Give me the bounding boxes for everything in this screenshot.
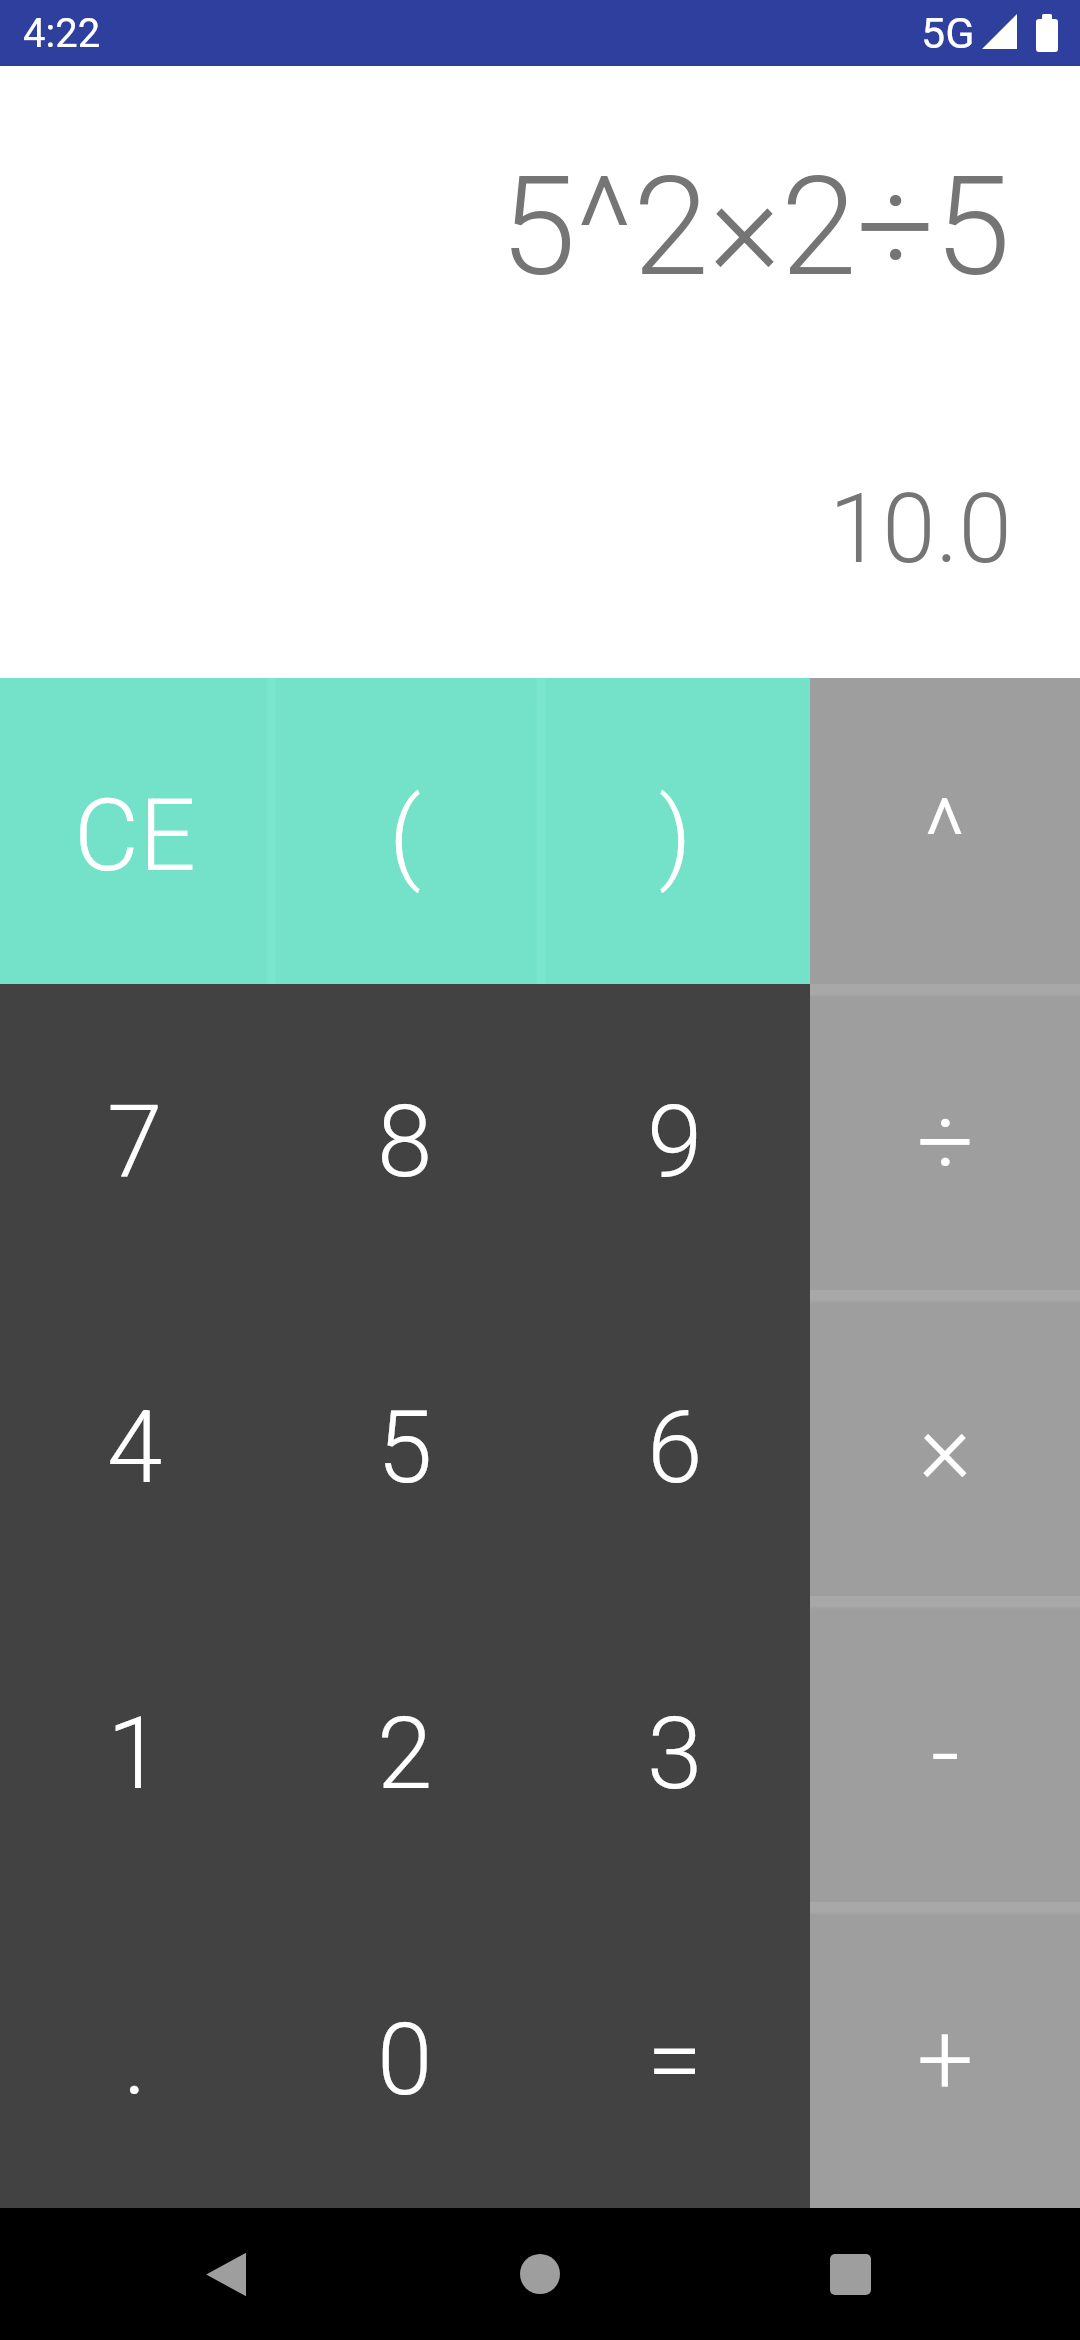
staticText: × bbox=[919, 1389, 972, 1506]
button[interactable]: Recent apps bbox=[784, 2208, 916, 2340]
button[interactable]: 9 bbox=[540, 984, 810, 1290]
staticText: 4:22 bbox=[23, 10, 101, 57]
staticText: 2 bbox=[377, 1695, 433, 1812]
button[interactable]: . bbox=[0, 1902, 270, 2208]
button[interactable]: ( bbox=[270, 678, 540, 984]
staticText: 3 bbox=[647, 1695, 703, 1812]
staticText: ( bbox=[389, 777, 421, 894]
staticText: 10.0 bbox=[829, 473, 1012, 586]
staticText: ^ bbox=[924, 777, 966, 894]
button[interactable]: ^ bbox=[810, 678, 1080, 984]
staticText: . bbox=[123, 2001, 147, 2118]
button[interactable]: Home bbox=[474, 2208, 606, 2340]
button[interactable]: Back bbox=[160, 2208, 292, 2340]
staticText: 1 bbox=[107, 1695, 163, 1812]
button[interactable]: + bbox=[810, 1902, 1080, 2208]
button[interactable]: 8 bbox=[270, 984, 540, 1290]
button[interactable]: 7 bbox=[0, 984, 270, 1290]
button[interactable]: 5 bbox=[270, 1290, 540, 1596]
button[interactable]: ÷ bbox=[810, 984, 1080, 1290]
button[interactable]: = bbox=[540, 1902, 810, 2208]
button[interactable]: 0 bbox=[270, 1902, 540, 2208]
staticText: ) bbox=[659, 777, 692, 894]
staticText: + bbox=[917, 2001, 974, 2118]
staticText: 0 bbox=[377, 2001, 433, 2118]
staticText: CE bbox=[74, 777, 196, 894]
staticText: 5G bbox=[921, 8, 975, 58]
button[interactable]: CE bbox=[0, 678, 270, 984]
staticText: 6 bbox=[647, 1389, 703, 1506]
staticText: - bbox=[931, 1695, 960, 1812]
button[interactable]: 1 bbox=[0, 1596, 270, 1902]
staticText: 5 bbox=[377, 1389, 433, 1506]
button[interactable]: - bbox=[810, 1596, 1080, 1902]
staticText: 7 bbox=[107, 1083, 163, 1200]
button[interactable]: ) bbox=[540, 678, 810, 984]
staticText: = bbox=[647, 2001, 703, 2118]
button[interactable]: 6 bbox=[540, 1290, 810, 1596]
button[interactable]: 2 bbox=[270, 1596, 540, 1902]
button[interactable]: 4 bbox=[0, 1290, 270, 1596]
button[interactable]: × bbox=[810, 1290, 1080, 1596]
staticText: 8 bbox=[377, 1083, 433, 1200]
staticText: ÷ bbox=[917, 1083, 974, 1200]
button[interactable]: 3 bbox=[540, 1596, 810, 1902]
staticText: 4 bbox=[107, 1389, 163, 1506]
staticText: 5^2×2÷5 bbox=[500, 147, 1011, 308]
staticText: 9 bbox=[647, 1083, 703, 1200]
